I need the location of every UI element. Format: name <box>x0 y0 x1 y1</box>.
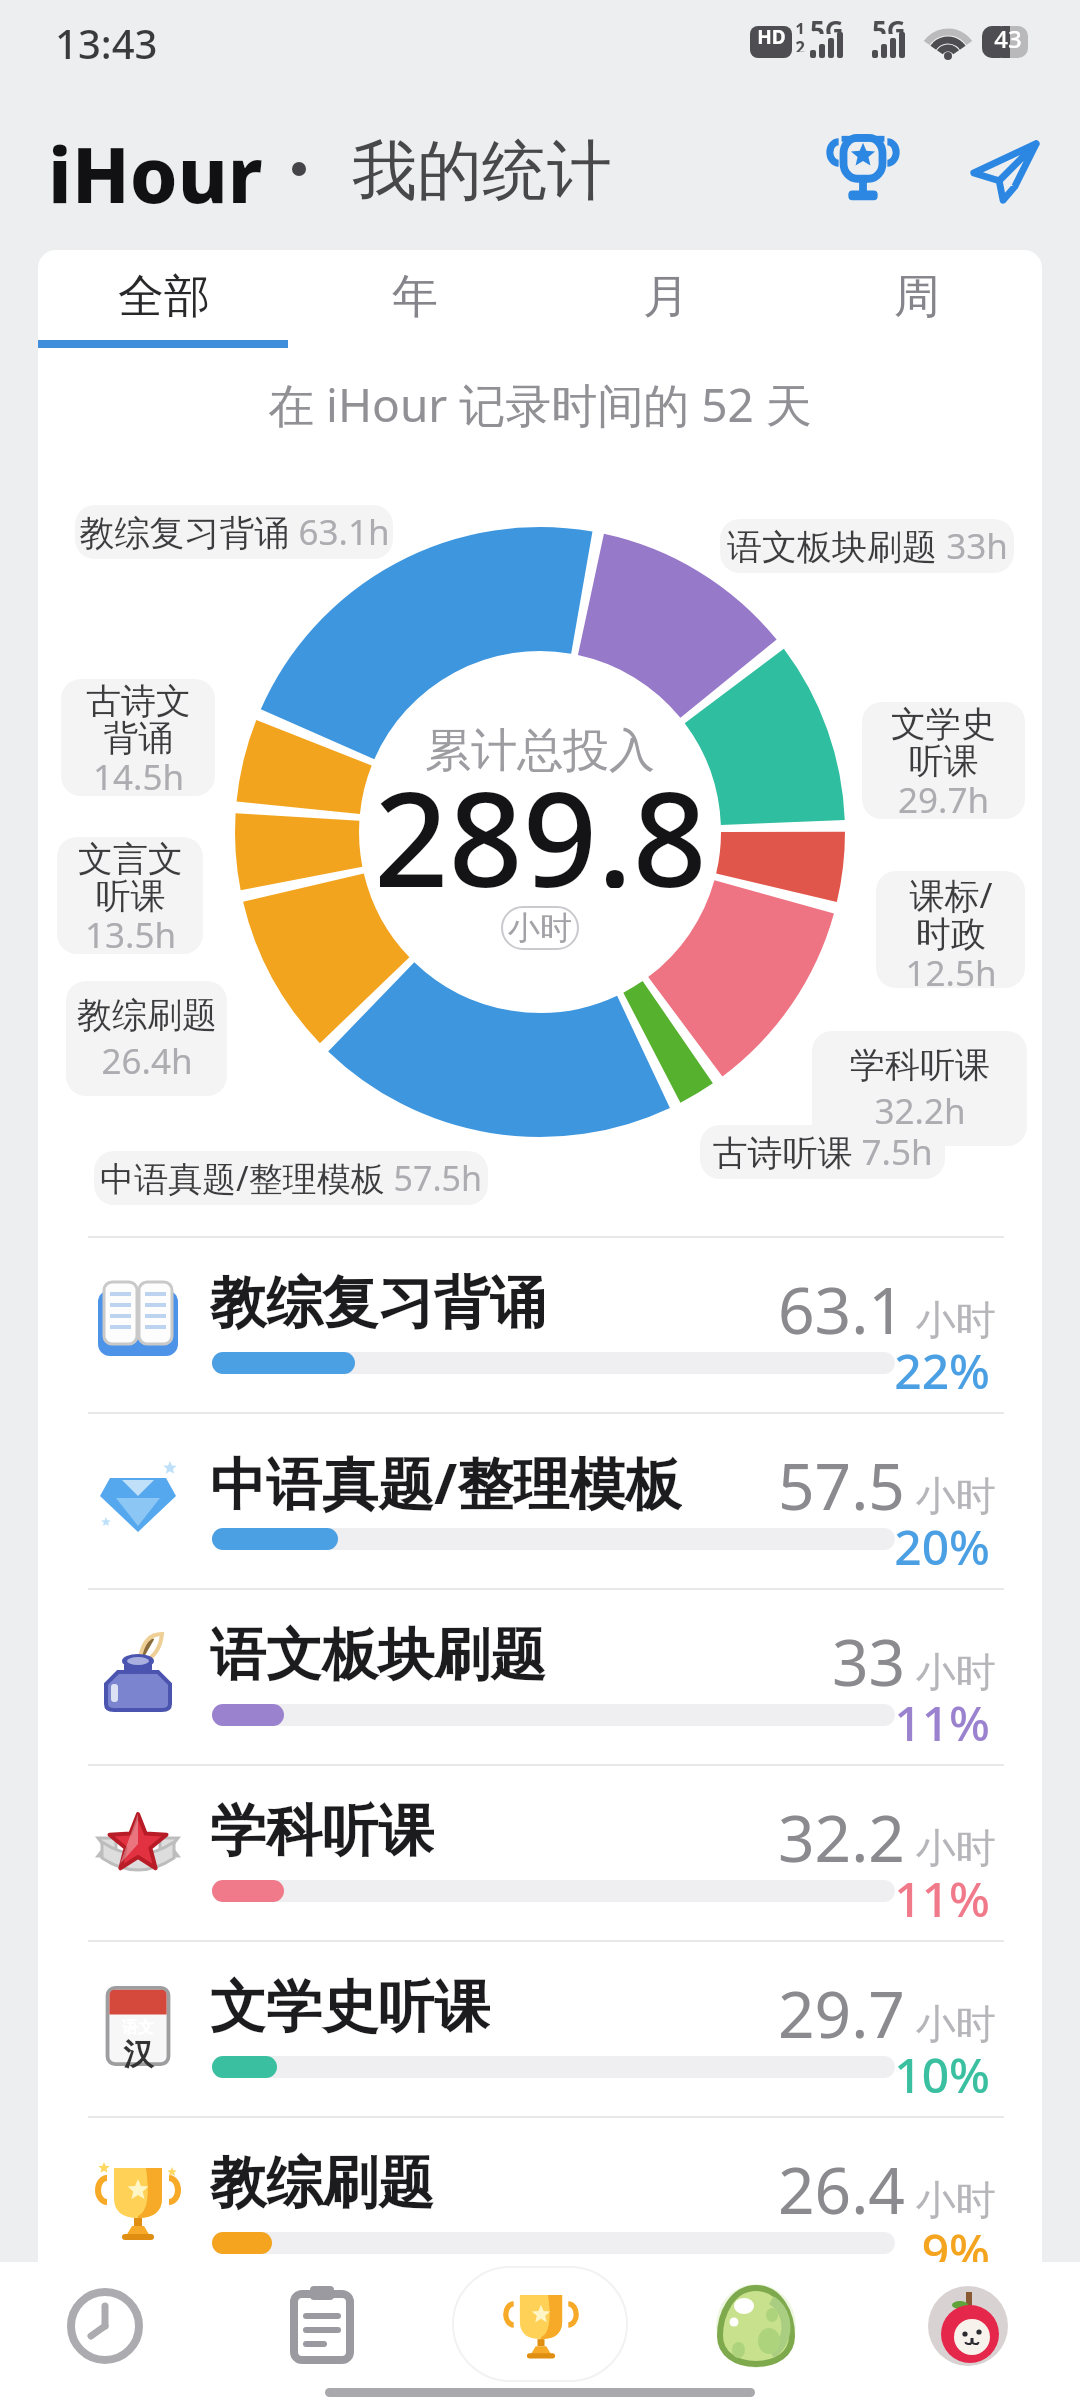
button[interactable] <box>38 1238 1042 1414</box>
button[interactable] <box>38 254 289 346</box>
staticText: 教综刷题 26.4h <box>77 993 217 1084</box>
staticText: 29.7 小时 <box>778 1970 996 2044</box>
staticText: 古诗文 背诵 14.5h <box>86 679 191 796</box>
staticText: 教综刷题 <box>210 2148 434 2218</box>
staticText: 语文 <box>122 2018 154 2038</box>
staticText: 22% <box>894 1338 990 1390</box>
staticText: 全部 <box>118 268 210 326</box>
staticText: 月 <box>643 268 689 326</box>
staticText: 小时 <box>508 908 572 948</box>
button[interactable] <box>490 2276 590 2376</box>
staticText: 文学史 听课 29.7h <box>891 702 996 819</box>
staticText: 中语真题/整理模板 <box>210 1444 682 1514</box>
button[interactable] <box>38 1414 1042 1590</box>
staticText: 9% <box>921 2218 990 2270</box>
button[interactable] <box>55 2276 155 2376</box>
staticText: 57.5 小时 <box>778 1442 996 1516</box>
button[interactable] <box>38 2118 1042 2294</box>
staticText: 在 iHour 记录时间的 52 天 <box>268 373 812 436</box>
staticText: 文言文 听课 13.5h <box>78 837 183 954</box>
staticText: 中语真题/整理模板 57.5h <box>100 1155 482 1201</box>
staticText: 学科听课 32.2h <box>850 1043 990 1134</box>
staticText: 32.2 小时 <box>778 1794 996 1868</box>
button[interactable] <box>820 126 906 212</box>
staticText: 43 <box>994 22 1022 48</box>
staticText: 13:43 <box>55 16 158 68</box>
staticText: 10% <box>894 2042 990 2094</box>
staticText: 文学史听课 <box>210 1972 490 2042</box>
staticText: 语文板块刷题 <box>210 1620 546 1690</box>
button[interactable] <box>38 1590 1042 1766</box>
button[interactable] <box>38 1766 1042 1942</box>
staticText: 11% <box>894 1866 990 1918</box>
staticText: 古诗听课 7.5h <box>712 1128 933 1176</box>
staticText: 年 <box>392 268 438 326</box>
staticText: 20% <box>894 1514 990 1566</box>
staticText: 33 小时 <box>832 1618 996 1692</box>
button[interactable] <box>540 254 791 346</box>
button[interactable] <box>706 2276 806 2376</box>
button[interactable] <box>962 126 1048 212</box>
staticText: 5G <box>872 12 906 34</box>
button[interactable] <box>272 2276 372 2376</box>
staticText: 289.8 <box>374 748 707 888</box>
staticText: iHour <box>48 122 263 214</box>
staticText: 教综复习背诵 63.1h <box>79 508 390 556</box>
staticText: 26.4 小时 <box>778 2146 996 2220</box>
staticText: 教综复习背诵 <box>210 1268 546 1338</box>
button[interactable] <box>791 254 1042 346</box>
staticText: 我的统计 <box>352 130 612 210</box>
staticText: 语文板块刷题 33h <box>727 522 1008 570</box>
button[interactable] <box>38 1942 1042 2118</box>
staticText: 周 <box>894 268 940 326</box>
staticText: 2 <box>795 36 805 52</box>
staticText: HD <box>757 24 786 46</box>
staticText: 63.1 小时 <box>778 1266 996 1340</box>
staticText: 累计总投入 <box>425 722 655 780</box>
staticText: 课标/ 时政 12.5h <box>905 871 997 988</box>
staticText: 11% <box>894 1690 990 1742</box>
staticText: 学科听课 <box>210 1796 434 1866</box>
staticText: 5G <box>810 12 844 34</box>
staticText: 汉 <box>123 2036 154 2074</box>
button[interactable] <box>918 2276 1018 2376</box>
button[interactable] <box>289 254 540 346</box>
staticText: 1 <box>795 18 805 34</box>
